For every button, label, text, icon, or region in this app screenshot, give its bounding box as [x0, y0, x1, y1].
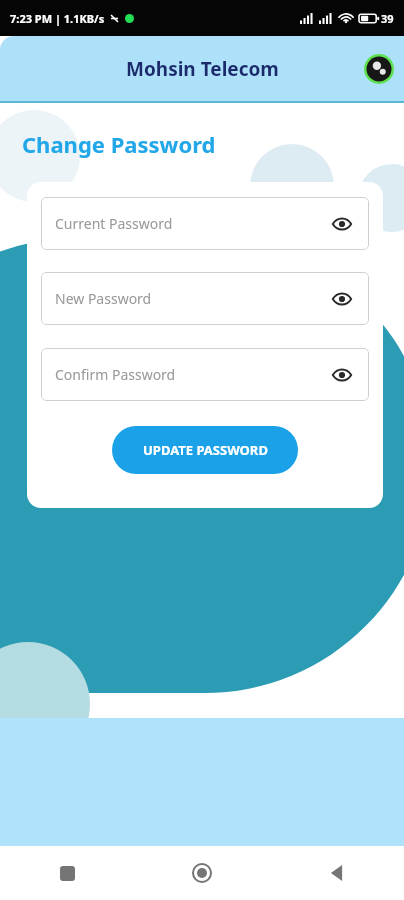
button[interactable]: Confirm Password	[41, 348, 369, 401]
button[interactable]: Toggle password visibility	[329, 286, 355, 312]
staticText: 39	[381, 11, 394, 26]
staticText: UPDATE PASSWORD	[143, 441, 268, 459]
button[interactable]: Profile	[364, 54, 394, 84]
button[interactable]: Home	[134, 846, 269, 900]
staticText: Change Password	[22, 129, 216, 159]
staticText: Mohsin Telecom	[126, 56, 279, 82]
staticText: New Password	[55, 289, 152, 308]
staticText: 7:23 PM | 1.1KB/s	[10, 11, 105, 26]
staticText: Current Password	[55, 214, 173, 233]
staticText: Confirm Password	[55, 365, 176, 384]
button[interactable]: Toggle password visibility	[329, 211, 355, 237]
button[interactable]: Back	[269, 846, 404, 900]
button[interactable]: New Password	[41, 272, 369, 325]
button[interactable]: UPDATE PASSWORD	[112, 426, 298, 474]
button[interactable]: Current Password	[41, 197, 369, 250]
button[interactable]: Recents	[0, 846, 134, 900]
button[interactable]: Toggle password visibility	[329, 362, 355, 388]
